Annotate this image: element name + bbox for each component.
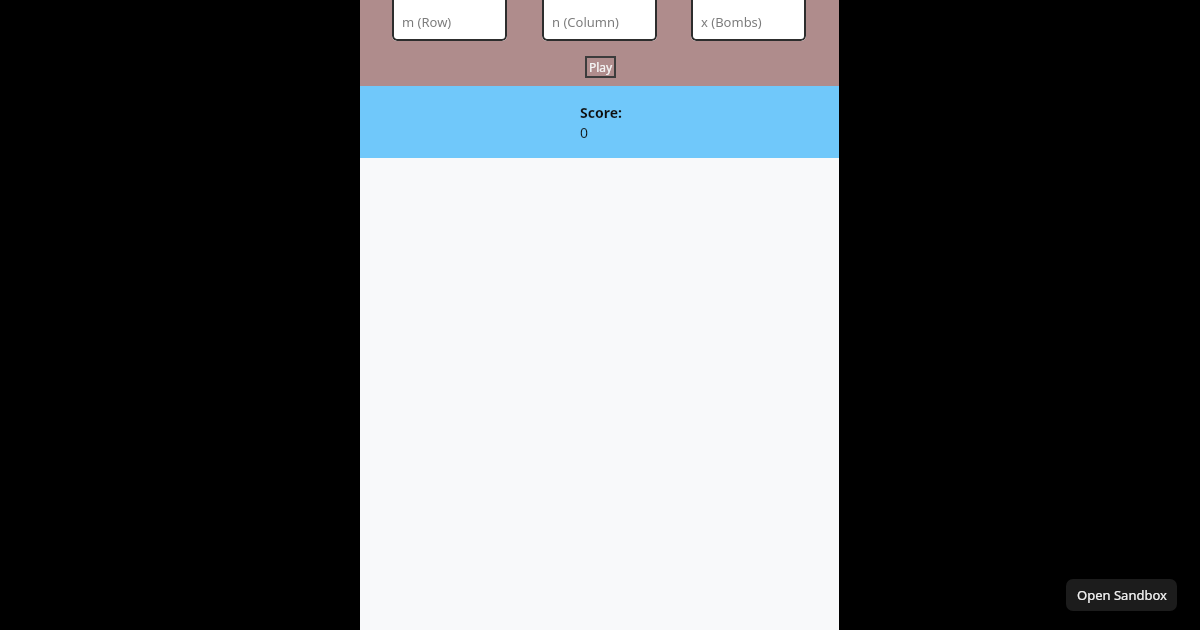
button[interactable]: Play [585, 56, 616, 78]
button[interactable]: Open Sandbox [1066, 579, 1177, 611]
button[interactable]: m (Row) [392, 0, 507, 41]
button[interactable]: x (Bombs) [691, 0, 806, 41]
staticText: 0 [580, 123, 589, 142]
staticText: n (Column) [552, 13, 619, 31]
staticText: Score: [580, 103, 622, 122]
staticText: Open Sandbox [1077, 586, 1167, 604]
staticText: m (Row) [402, 13, 452, 31]
staticText: Play [589, 59, 613, 75]
staticText: x (Bombs) [701, 13, 762, 31]
button[interactable]: n (Column) [542, 0, 657, 41]
